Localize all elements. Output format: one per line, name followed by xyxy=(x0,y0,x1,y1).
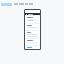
button[interactable] xyxy=(25,46,40,49)
button[interactable] xyxy=(27,19,38,21)
button[interactable] xyxy=(25,39,40,45)
button[interactable] xyxy=(25,24,40,30)
button[interactable] xyxy=(25,31,40,38)
button[interactable] xyxy=(25,16,40,23)
button[interactable]: Top app bar xyxy=(25,13,40,15)
